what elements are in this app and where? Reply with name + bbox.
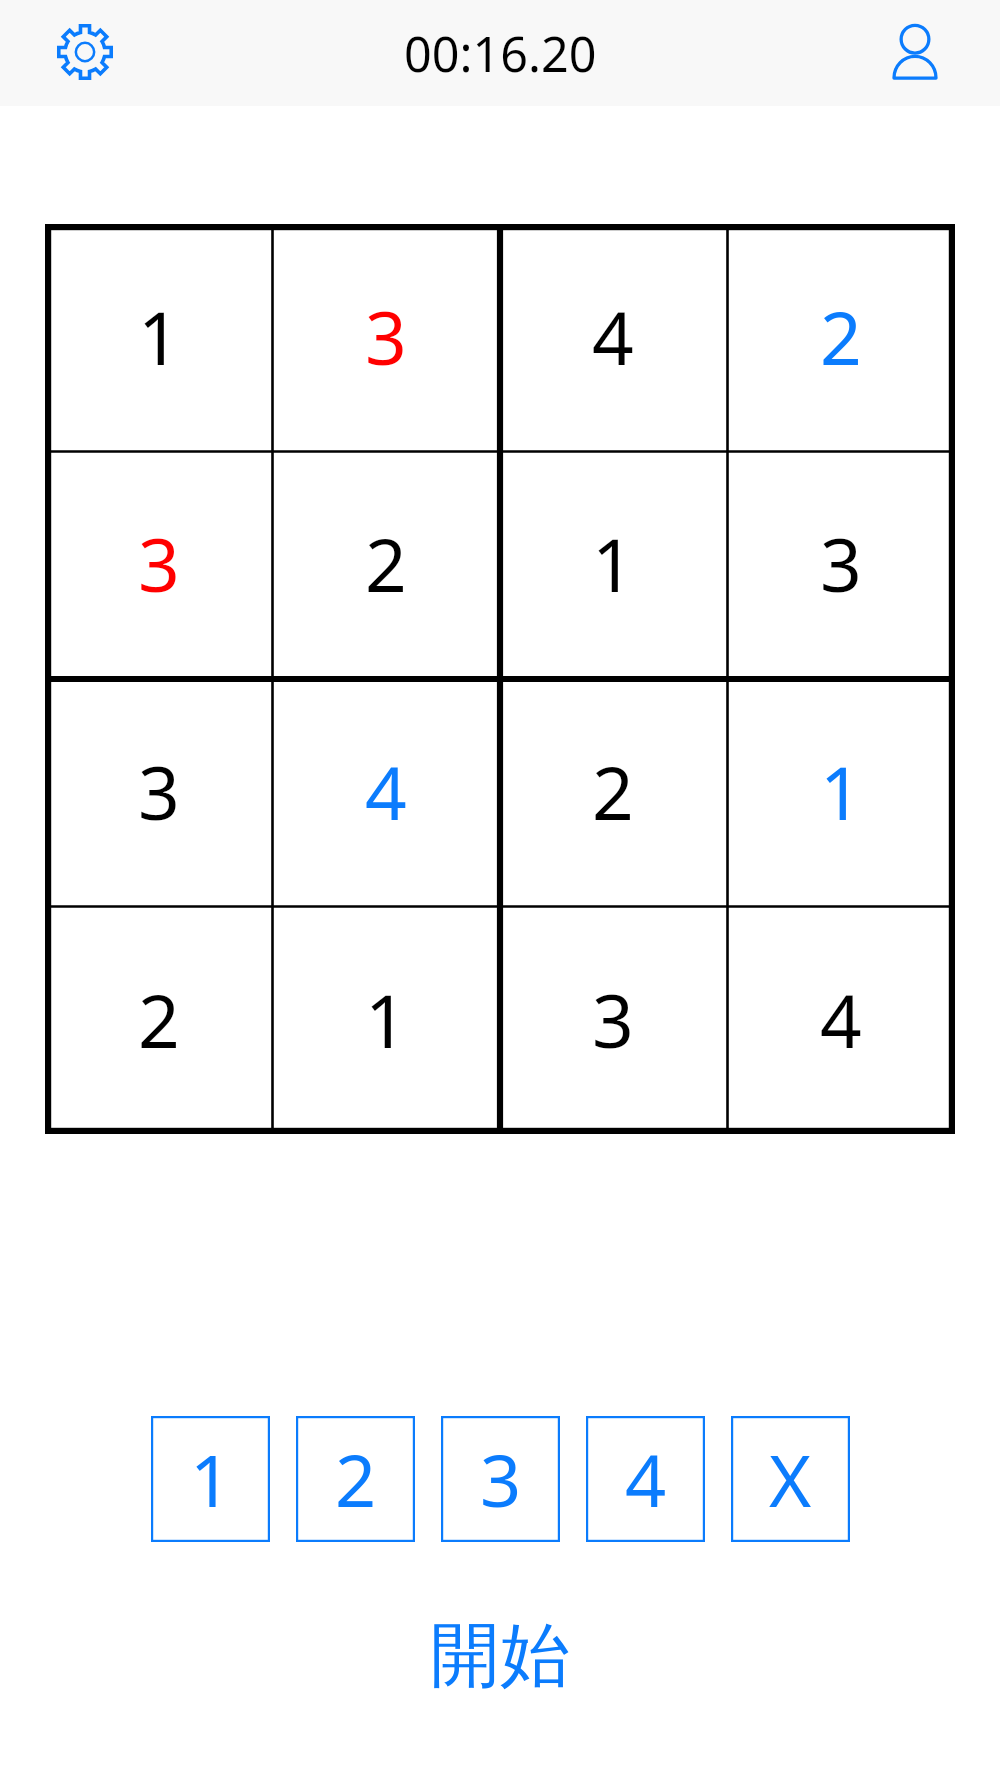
- staticText: 3: [820, 514, 862, 613]
- button[interactable]: 3: [727, 451, 955, 678]
- staticText: 開始: [430, 1612, 570, 1700]
- staticText: 1: [365, 970, 407, 1069]
- staticText: 1: [820, 742, 862, 841]
- staticText: 00:16.20: [404, 20, 597, 86]
- button[interactable]: 3: [499, 906, 727, 1134]
- staticText: 4: [592, 287, 634, 386]
- button[interactable]: 3: [441, 1416, 560, 1542]
- button[interactable]: 4: [499, 224, 727, 451]
- staticText: 3: [592, 970, 634, 1069]
- staticText: 4: [365, 742, 407, 841]
- staticText: 2: [138, 970, 180, 1069]
- button[interactable]: 1: [727, 678, 955, 906]
- button[interactable]: 2: [45, 906, 272, 1134]
- staticText: 3: [138, 742, 180, 841]
- staticText: X: [769, 1430, 812, 1528]
- staticText: 4: [625, 1430, 667, 1528]
- staticText: 3: [138, 514, 180, 613]
- button[interactable]: 1: [45, 224, 272, 451]
- staticText: 3: [365, 287, 407, 386]
- button[interactable]: Settings: [56, 23, 114, 81]
- staticText: 2: [592, 742, 634, 841]
- staticText: 1: [190, 1430, 232, 1528]
- button[interactable]: 2: [272, 451, 499, 678]
- button[interactable]: 1: [151, 1416, 270, 1542]
- staticText: 2: [335, 1430, 377, 1528]
- staticText: 1: [592, 514, 634, 613]
- staticText: 1: [138, 287, 180, 386]
- button[interactable]: Account: [892, 24, 938, 82]
- staticText: 4: [820, 970, 862, 1069]
- button[interactable]: 2: [727, 224, 955, 451]
- staticText: 2: [365, 514, 407, 613]
- button[interactable]: 2: [296, 1416, 415, 1542]
- button[interactable]: 3: [45, 678, 272, 906]
- button[interactable]: 3: [45, 451, 272, 678]
- button[interactable]: 開始: [428, 1612, 572, 1700]
- button[interactable]: 2: [499, 678, 727, 906]
- button[interactable]: 4: [586, 1416, 705, 1542]
- button[interactable]: X: [731, 1416, 850, 1542]
- staticText: 3: [480, 1430, 522, 1528]
- button[interactable]: 4: [727, 906, 955, 1134]
- button[interactable]: 3: [272, 224, 499, 451]
- button[interactable]: 1: [499, 451, 727, 678]
- button[interactable]: 1: [272, 906, 499, 1134]
- button[interactable]: 4: [272, 678, 499, 906]
- staticText: 2: [820, 287, 862, 386]
